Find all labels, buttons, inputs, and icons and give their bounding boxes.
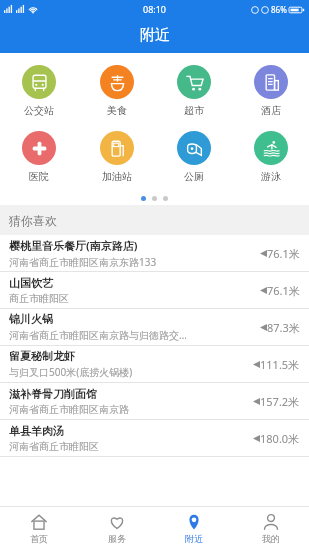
- staticText: 游泳: [261, 170, 281, 183]
- staticText: 河南省商丘市睢阳区南京路与归德路交…: [9, 328, 187, 342]
- staticText: 附近: [185, 533, 203, 544]
- staticText: 157.2米: [260, 394, 300, 409]
- button[interactable]: 超市: [155, 61, 232, 121]
- staticText: 76.1米: [267, 246, 300, 261]
- button[interactable]: 樱桃里音乐餐厅(南京路店): [0, 235, 309, 272]
- staticText: 美食: [107, 104, 127, 117]
- staticText: 服务: [108, 533, 126, 544]
- staticText: 超市: [184, 104, 204, 117]
- staticText: 商丘市睢阳区: [9, 292, 69, 305]
- staticText: 86%: [271, 4, 287, 15]
- button[interactable]: 酒店: [232, 61, 309, 121]
- staticText: 87.3米: [267, 320, 300, 335]
- staticText: 180.0米: [260, 431, 300, 446]
- staticText: 08:10: [143, 3, 167, 15]
- button[interactable]: 附近: [155, 507, 232, 550]
- staticText: 公厕: [184, 170, 204, 183]
- button[interactable]: 公厕: [155, 127, 232, 187]
- button[interactable]: 单县羊肉汤: [0, 420, 309, 457]
- staticText: 我的: [262, 533, 280, 544]
- staticText: 河南省商丘市睢阳区南京路: [9, 403, 129, 416]
- staticText: 111.5米: [260, 357, 300, 372]
- staticText: 医院: [29, 170, 49, 183]
- staticText: 76.1米: [267, 283, 300, 298]
- staticText: 附近: [140, 26, 170, 45]
- button[interactable]: 滋补脊骨刀削面馆: [0, 383, 309, 420]
- staticText: 首页: [30, 533, 48, 544]
- button[interactable]: 留夏秘制龙虾: [0, 346, 309, 383]
- staticText: 猜你喜欢: [9, 213, 57, 228]
- staticText: 樱桃里音乐餐厅(南京路店): [9, 238, 138, 253]
- button[interactable]: 首页: [0, 507, 78, 550]
- button[interactable]: 医院: [0, 127, 78, 187]
- button[interactable]: 加油站: [78, 127, 155, 187]
- staticText: 滋补脊骨刀削面馆: [9, 387, 97, 401]
- staticText: 山国饮艺: [9, 276, 53, 290]
- staticText: 单县羊肉汤: [9, 424, 64, 438]
- staticText: 河南省商丘市睢阳区南京东路133: [9, 255, 157, 269]
- button[interactable]: 山国饮艺: [0, 272, 309, 309]
- staticText: 公交站: [24, 104, 54, 117]
- button[interactable]: 游泳: [232, 127, 309, 187]
- staticText: 锦川火锅: [9, 312, 53, 326]
- button[interactable]: 我的: [232, 507, 309, 550]
- button[interactable]: 服务: [78, 507, 155, 550]
- button[interactable]: 公交站: [0, 61, 78, 121]
- button[interactable]: 锦川火锅: [0, 309, 309, 346]
- staticText: 河南省商丘市睢阳区: [9, 440, 99, 453]
- staticText: 酒店: [261, 104, 281, 117]
- button[interactable]: 美食: [78, 61, 155, 121]
- staticText: 与归叉口500米(底捞火锅楼): [9, 365, 133, 379]
- staticText: 留夏秘制龙虾: [9, 349, 75, 363]
- staticText: 加油站: [102, 170, 132, 183]
